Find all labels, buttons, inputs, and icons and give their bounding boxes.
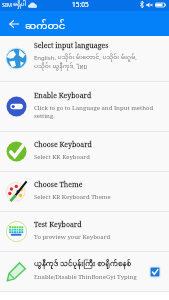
button[interactable]: Test Keyboard (0, 212, 169, 251)
staticText: Test Keyboard (34, 220, 82, 230)
staticText: Choose Theme (34, 180, 83, 190)
staticText: Select KK Keyboard (34, 153, 90, 161)
staticText: Select KR Keyboard Theme (34, 193, 111, 201)
button[interactable]: Back (0, 11, 24, 36)
staticText: SIM မရှိပါ (2, 1, 26, 8)
staticText: Click to go to Language and Input method (34, 104, 154, 112)
staticText: Select input languages (34, 41, 109, 51)
button[interactable]: ယွနီကုဒ် သင်ပုန်းကြီး စာရိုက်စနစ် (0, 252, 169, 291)
button[interactable]: Choose Keyboard (0, 132, 169, 171)
button[interactable]: Choose Theme (0, 172, 169, 211)
staticText: Enable/Disable ThinBoneGyi Typing (34, 273, 137, 281)
button[interactable]: Select input languages (0, 36, 169, 81)
staticText: setting. (34, 112, 55, 120)
staticText: 15:05 (72, 0, 89, 9)
staticText: Choose Keyboard (34, 140, 92, 150)
button[interactable]: Enable ThinBoneGyi Typing (147, 264, 162, 279)
staticText: ဆက်တင် (25, 20, 66, 34)
staticText: To preview your Keyboard (34, 233, 111, 241)
staticText: ပသိုဝ်း ယွနီကုဒ်, ไทย (34, 62, 87, 72)
staticText: ယွနီကုဒ် သင်ပုန်းကြီး စာရိုက်စနစ် (34, 260, 132, 270)
staticText: Enable Keyboard (34, 91, 92, 101)
staticText: English, ပသိုဝ်း မ်ံးတောင်, ပသိုဝ်း မ်ံး… (34, 54, 137, 62)
button[interactable]: Enable Keyboard (0, 82, 169, 131)
